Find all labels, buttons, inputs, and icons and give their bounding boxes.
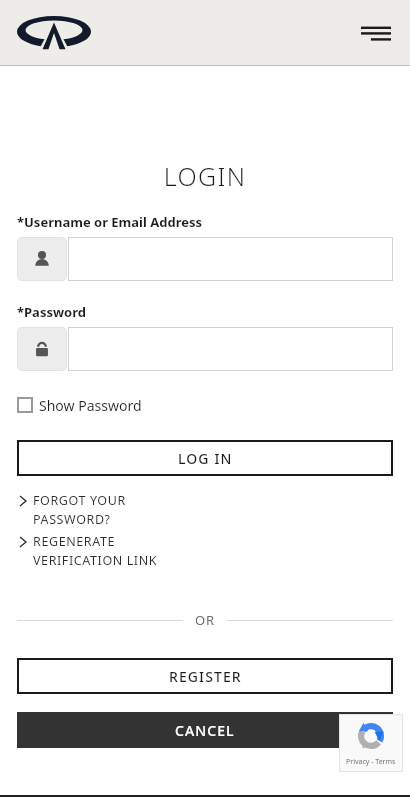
button[interactable]: Infiniti home [14,13,94,53]
button[interactable]: reCAPTCHA privacy and terms [339,714,403,772]
staticText: LOG IN [178,449,233,468]
button[interactable]: LOG IN [17,440,393,476]
staticText: CANCEL [175,721,235,740]
button[interactable]: Show Password [17,393,142,417]
staticText: *Password [17,303,410,321]
button[interactable]: Username field [17,237,393,281]
staticText: REGISTER [169,667,242,686]
staticText: Show Password [39,396,142,415]
staticText: LOGIN [0,159,410,193]
staticText: Privacy - Terms [346,757,396,767]
staticText: PASSWORD? [33,511,111,528]
staticText: VERIFICATION LINK [33,552,158,569]
button[interactable]: REGISTER [17,658,393,694]
staticText: *Username or Email Address [17,213,410,231]
staticText: OR [195,611,215,629]
button[interactable]: FORGOT YOUR [15,492,393,528]
button[interactable]: Menu [354,13,398,53]
staticText: REGENERATE [33,533,116,550]
staticText: FORGOT YOUR [33,492,126,509]
button[interactable]: REGENERATE [15,533,393,569]
button[interactable]: CANCEL [17,712,393,748]
button[interactable]: Password field [17,327,393,371]
